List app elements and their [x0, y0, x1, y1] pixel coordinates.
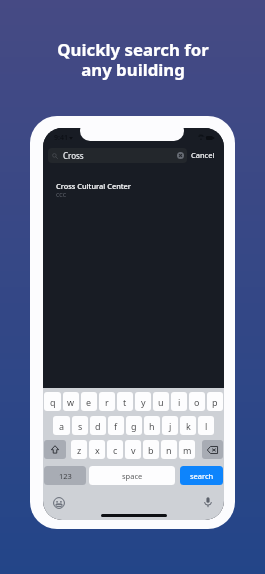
- staticText: x: [95, 444, 100, 456]
- button[interactable]: f: [108, 416, 124, 435]
- staticText: a: [59, 420, 65, 432]
- staticText: Quickly search for any building: [57, 38, 209, 81]
- button[interactable]: b: [143, 440, 159, 459]
- button[interactable]: k: [180, 416, 196, 435]
- button[interactable]: Dictation: [202, 496, 214, 508]
- staticText: k: [186, 420, 191, 432]
- button[interactable]: x: [89, 440, 105, 459]
- staticText: search: [190, 471, 214, 481]
- button[interactable]: 123: [44, 466, 86, 485]
- button[interactable]: Cross Cultural Center: [43, 173, 224, 203]
- button[interactable]: Clear text: [177, 152, 184, 159]
- staticText: CCC: [56, 191, 67, 198]
- staticText: Cancel: [191, 150, 215, 160]
- button[interactable]: l: [198, 416, 214, 435]
- button[interactable]: z: [71, 440, 87, 459]
- button[interactable]: u: [153, 392, 169, 411]
- button[interactable]: a: [53, 416, 70, 435]
- staticText: z: [77, 444, 82, 456]
- staticText: space: [122, 471, 143, 481]
- staticText: 123: [59, 471, 72, 481]
- button[interactable]: o: [189, 392, 205, 411]
- staticText: t: [123, 396, 127, 408]
- staticText: v: [131, 444, 136, 456]
- button[interactable]: space: [89, 466, 175, 485]
- button[interactable]: v: [125, 440, 141, 459]
- button[interactable]: Emoji keyboard: [53, 497, 65, 509]
- staticText: p: [212, 396, 218, 408]
- staticText: b: [148, 444, 154, 456]
- button[interactable]: d: [90, 416, 106, 435]
- button[interactable]: r: [99, 392, 115, 411]
- button[interactable]: q: [44, 392, 61, 411]
- button[interactable]: Cross: [48, 148, 187, 163]
- button[interactable]: Backspace: [202, 440, 223, 459]
- staticText: q: [50, 396, 56, 408]
- button[interactable]: p: [207, 392, 223, 411]
- button[interactable]: w: [63, 392, 79, 411]
- staticText: o: [194, 396, 200, 408]
- button[interactable]: c: [107, 440, 123, 459]
- staticText: Cross: [63, 150, 84, 161]
- staticText: 9:41: [54, 133, 68, 143]
- staticText: h: [149, 420, 155, 432]
- staticText: n: [166, 444, 172, 456]
- button[interactable]: s: [72, 416, 88, 435]
- staticText: r: [105, 396, 109, 408]
- button[interactable]: m: [179, 440, 195, 459]
- staticText: s: [78, 420, 83, 432]
- staticText: g: [131, 420, 137, 432]
- staticText: l: [205, 420, 208, 432]
- staticText: c: [113, 444, 118, 456]
- staticText: u: [158, 396, 164, 408]
- button[interactable]: search: [180, 466, 223, 485]
- staticText: y: [141, 396, 146, 408]
- button[interactable]: n: [161, 440, 177, 459]
- button[interactable]: i: [171, 392, 187, 411]
- button[interactable]: Shift: [44, 440, 66, 459]
- staticText: j: [169, 420, 172, 432]
- button[interactable]: g: [126, 416, 142, 435]
- staticText: f: [114, 420, 118, 432]
- staticText: i: [178, 396, 181, 408]
- button[interactable]: Cancel: [187, 146, 219, 164]
- button[interactable]: y: [135, 392, 151, 411]
- staticText: e: [86, 396, 92, 408]
- button[interactable]: e: [81, 392, 97, 411]
- staticText: d: [95, 420, 101, 432]
- staticText: Cross Cultural Center: [56, 181, 131, 191]
- button[interactable]: j: [162, 416, 178, 435]
- button[interactable]: h: [144, 416, 160, 435]
- button[interactable]: t: [117, 392, 133, 411]
- staticText: w: [67, 396, 75, 408]
- staticText: m: [183, 444, 192, 456]
